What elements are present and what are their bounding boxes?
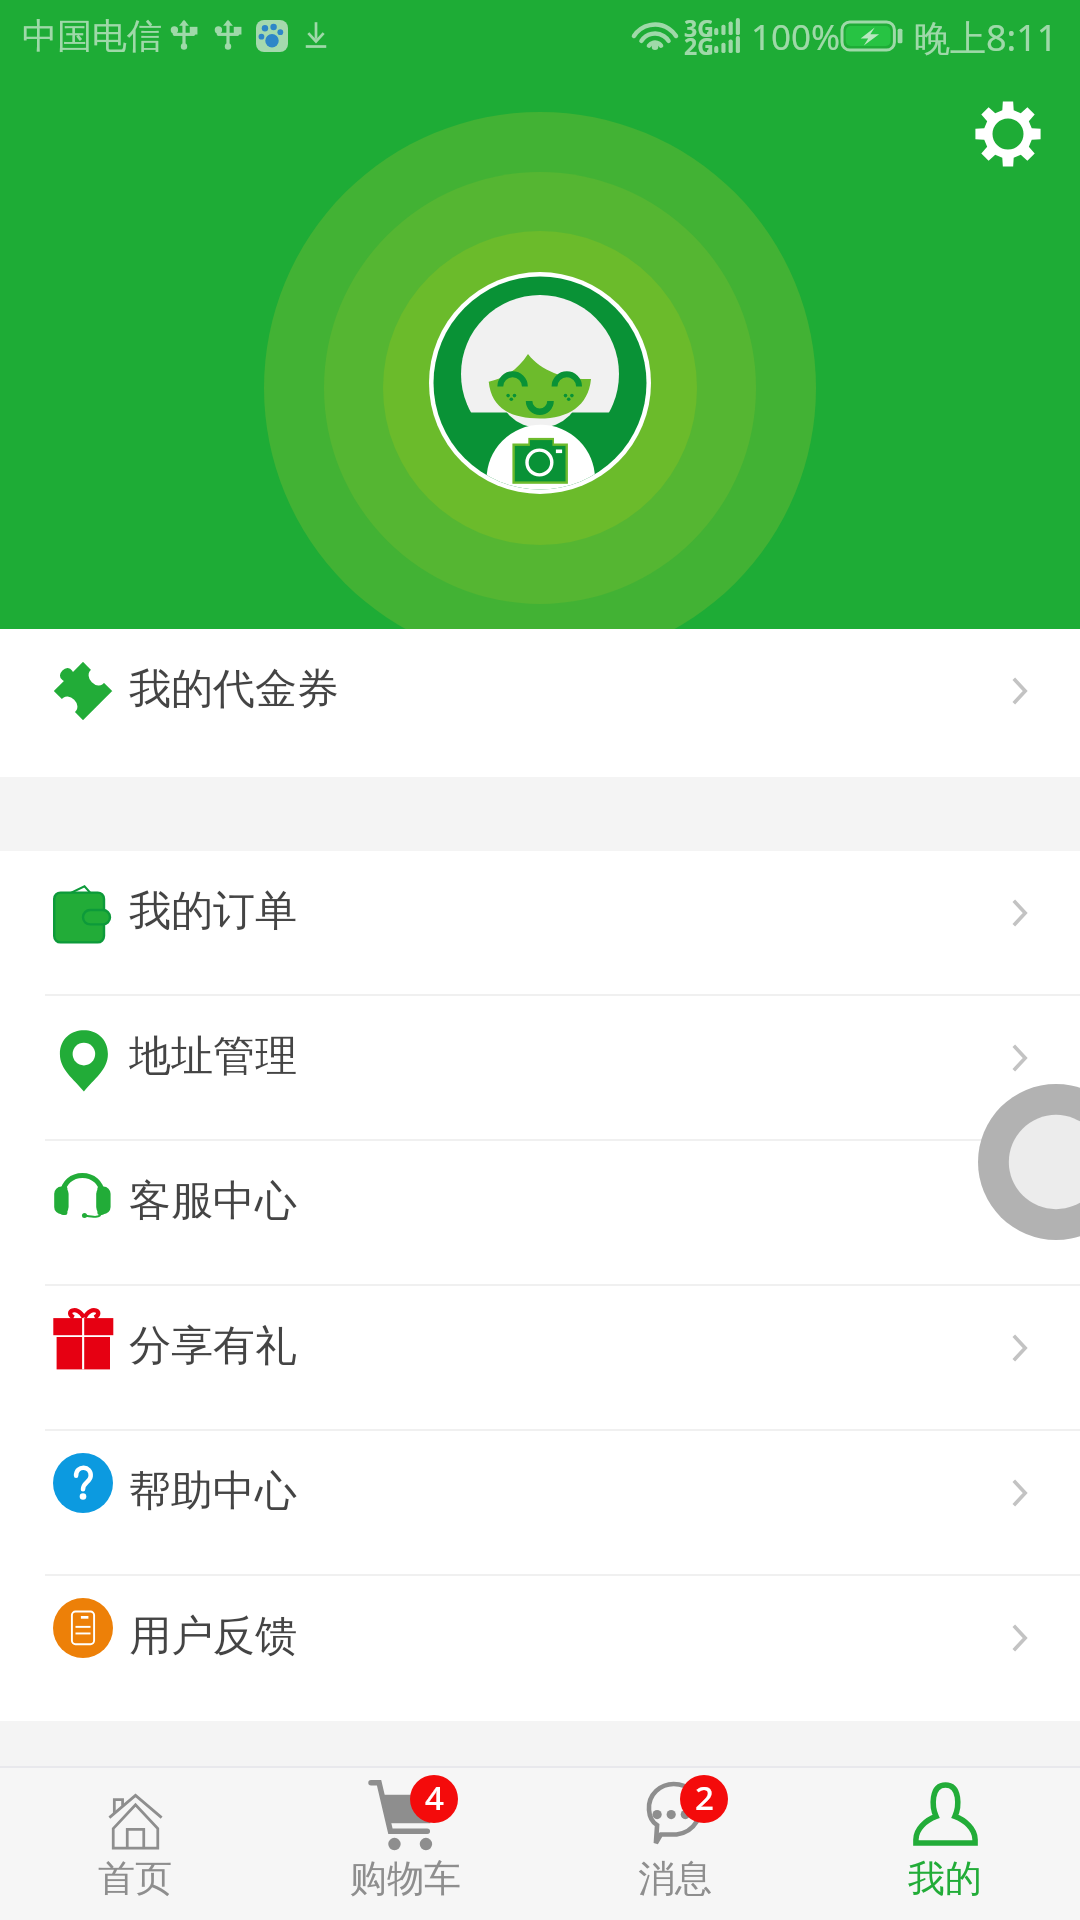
staticText: 100% bbox=[751, 13, 841, 61]
button[interactable]: 4 bbox=[270, 1768, 540, 1920]
staticText: 消息 bbox=[638, 1855, 712, 1902]
button[interactable]: 帮助中心 bbox=[0, 1431, 1080, 1576]
button[interactable]: 我的 bbox=[810, 1768, 1080, 1920]
button[interactable]: 用户反馈 bbox=[0, 1576, 1080, 1721]
staticText: 客服中心 bbox=[129, 1175, 297, 1228]
button[interactable]: 我的代金券 bbox=[0, 629, 1080, 774]
staticText: 帮助中心 bbox=[129, 1465, 297, 1518]
staticText: 分享有礼 bbox=[129, 1320, 297, 1373]
button[interactable]: 分享有礼 bbox=[0, 1286, 1080, 1431]
staticText: 购物车 bbox=[350, 1855, 461, 1902]
button[interactable]: Settings bbox=[968, 94, 1048, 174]
staticText: 2G bbox=[684, 30, 714, 61]
staticText: 中国电信 bbox=[22, 14, 162, 58]
button[interactable]: 我的订单 bbox=[0, 851, 1080, 996]
button[interactable]: Assistive touch bbox=[978, 1084, 1080, 1240]
button[interactable]: 客服中心 bbox=[0, 1141, 1080, 1286]
button[interactable]: 地址管理 bbox=[0, 996, 1080, 1141]
staticText: 我的代金券 bbox=[129, 663, 339, 716]
staticText: 晚上8:11 bbox=[914, 13, 1058, 62]
staticText: 首页 bbox=[98, 1855, 172, 1902]
staticText: 3G bbox=[684, 12, 714, 43]
staticText: 4 bbox=[425, 1775, 444, 1820]
staticText: 我的 bbox=[908, 1855, 982, 1902]
staticText: 2 bbox=[695, 1775, 714, 1820]
button[interactable]: 首页 bbox=[0, 1768, 270, 1920]
staticText: 地址管理 bbox=[129, 1030, 297, 1083]
staticText: 用户反馈 bbox=[129, 1610, 297, 1663]
button[interactable]: 2 bbox=[540, 1768, 810, 1920]
staticText: 我的订单 bbox=[129, 885, 297, 938]
